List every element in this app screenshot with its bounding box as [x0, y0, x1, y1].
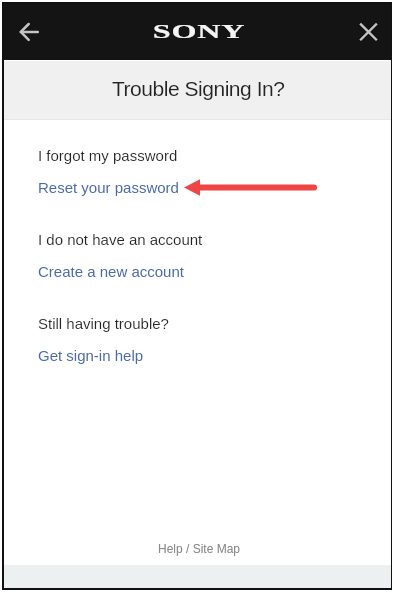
button[interactable]: SONY [149, 17, 249, 47]
button[interactable]: Back [13, 16, 45, 48]
staticText: SONY [152, 22, 246, 42]
staticText: I forgot my password [38, 147, 178, 164]
button[interactable]: Get sign-in help [38, 347, 144, 364]
button[interactable]: Help / Site Map [158, 542, 241, 555]
staticText: I do not have an account [38, 231, 203, 248]
button[interactable]: Close [353, 16, 385, 48]
staticText: Trouble Signing In? [112, 77, 285, 100]
button[interactable]: Reset your password [38, 179, 179, 196]
button[interactable]: Create a new account [38, 263, 184, 280]
staticText: Still having trouble? [38, 315, 169, 332]
